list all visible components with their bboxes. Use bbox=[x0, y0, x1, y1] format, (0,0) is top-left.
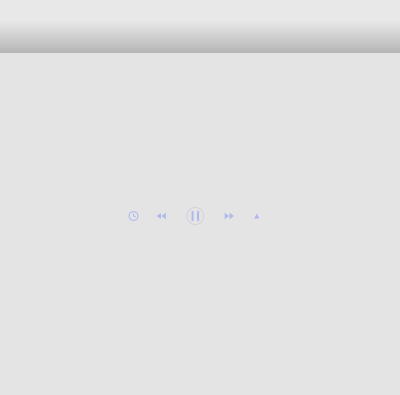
button[interactable]: Pause bbox=[178, 199, 212, 233]
button[interactable]: Elapsed time bbox=[118, 201, 148, 231]
button[interactable]: Rewind bbox=[146, 201, 176, 231]
button[interactable]: AirPlay bbox=[244, 201, 270, 231]
button[interactable]: Fast forward bbox=[214, 201, 244, 231]
